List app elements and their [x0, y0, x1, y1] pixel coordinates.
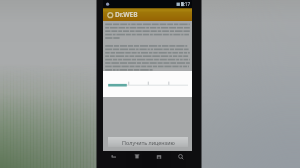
staticText: Получить лицензию — [122, 139, 175, 146]
button[interactable]: Search — [177, 153, 185, 161]
button[interactable] — [103, 71, 192, 97]
button[interactable]: Dr.WEB — [103, 8, 192, 21]
button[interactable]: Получить лицензию — [108, 137, 188, 147]
button[interactable]: Back — [110, 153, 118, 161]
staticText: 5:17 — [181, 1, 191, 7]
button[interactable]: Home — [155, 153, 163, 161]
button[interactable]: Menu — [133, 153, 141, 161]
staticText: Dr.WEB — [115, 10, 138, 19]
